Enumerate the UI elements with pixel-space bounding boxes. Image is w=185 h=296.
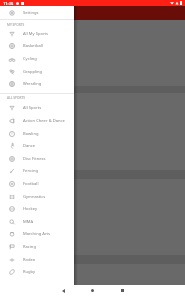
staticText: Cycling: [23, 56, 37, 62]
staticText: All My Sports: [23, 31, 49, 37]
staticText: Dance: [23, 143, 36, 149]
staticText: Grappling: [23, 69, 43, 75]
staticText: MMA: [23, 219, 34, 225]
button[interactable]: Basketball: [0, 39, 74, 52]
staticText: MY SPORTS: [7, 23, 25, 27]
button[interactable]: Hockey: [0, 202, 74, 215]
staticText: Action Cheer & Dance: [23, 118, 65, 124]
button[interactable]: Rodeo: [0, 253, 74, 266]
button[interactable]: Disc Fitness: [0, 152, 74, 165]
button[interactable]: Settings: [0, 6, 74, 19]
button[interactable]: Bowling: [0, 127, 74, 140]
staticText: Wrestling: [23, 81, 42, 87]
staticText: All Sports: [23, 105, 42, 111]
staticText: Settings: [23, 10, 39, 16]
button[interactable]: Recent apps: [117, 285, 128, 296]
button[interactable]: MMA: [0, 215, 74, 228]
button[interactable]: Home: [87, 285, 98, 296]
staticText: Football: [23, 181, 39, 187]
button[interactable]: Action Cheer & Dance: [0, 114, 74, 127]
button[interactable]: All Sports: [0, 101, 74, 114]
button[interactable]: Football: [0, 177, 74, 190]
staticText: Fencing: [23, 168, 39, 174]
button[interactable]: Wrestling: [0, 77, 74, 90]
button[interactable]: Racing: [0, 240, 74, 253]
button[interactable]: Fencing: [0, 164, 74, 177]
staticText: Disc Fitness: [23, 156, 46, 162]
button[interactable]: Cycling: [0, 52, 74, 65]
button[interactable]: Gymnastics: [0, 190, 74, 203]
staticText: Racing: [23, 244, 36, 250]
staticText: Marching Arts: [23, 231, 51, 237]
staticText: Rodeo: [23, 257, 36, 263]
staticText: Rugby: [23, 269, 36, 275]
staticText: Hockey: [23, 206, 37, 212]
staticText: Gymnastics: [23, 194, 46, 200]
button[interactable]: All My Sports: [0, 27, 74, 40]
staticText: Basketball: [23, 43, 43, 49]
button[interactable]: Grappling: [0, 65, 74, 78]
button[interactable]: Marching Arts: [0, 227, 74, 240]
button[interactable]: Rugby: [0, 265, 74, 278]
staticText: 11:06: [3, 1, 14, 6]
button[interactable]: Dance: [0, 139, 74, 152]
staticText: ALL SPORTS: [7, 96, 26, 100]
staticText: Bowling: [23, 131, 39, 137]
button[interactable]: Back: [58, 285, 69, 296]
